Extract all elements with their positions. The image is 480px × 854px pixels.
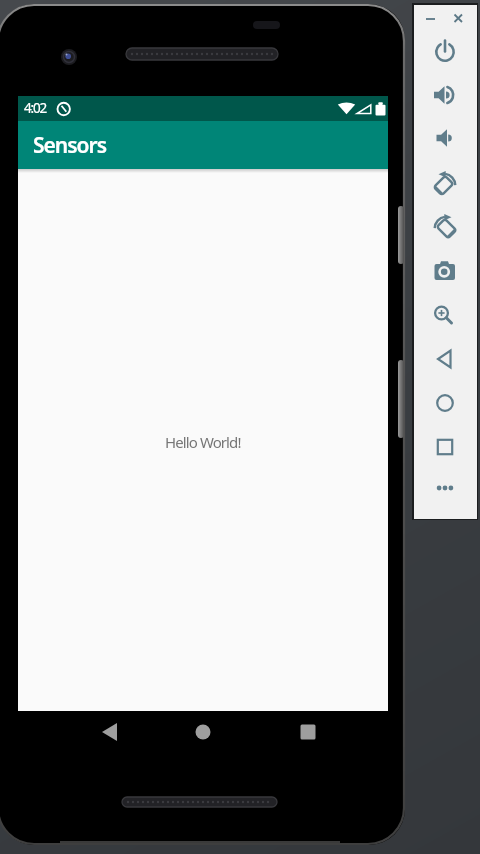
button[interactable] — [427, 298, 463, 334]
button[interactable] — [290, 714, 326, 750]
button[interactable] — [427, 33, 463, 69]
staticText: 4:02 — [24, 99, 46, 117]
button[interactable] — [427, 470, 463, 506]
button[interactable] — [422, 11, 439, 27]
button[interactable] — [427, 429, 463, 465]
button[interactable] — [92, 714, 128, 750]
staticText: Sensors — [33, 131, 107, 160]
button[interactable] — [427, 120, 463, 156]
button[interactable] — [427, 165, 463, 201]
button[interactable] — [427, 77, 463, 113]
button[interactable] — [450, 10, 467, 26]
button[interactable] — [427, 341, 463, 377]
staticText: Hello World! — [165, 432, 241, 452]
button[interactable] — [185, 714, 221, 750]
button[interactable] — [427, 208, 463, 244]
button[interactable] — [427, 252, 463, 288]
button[interactable] — [427, 385, 463, 421]
